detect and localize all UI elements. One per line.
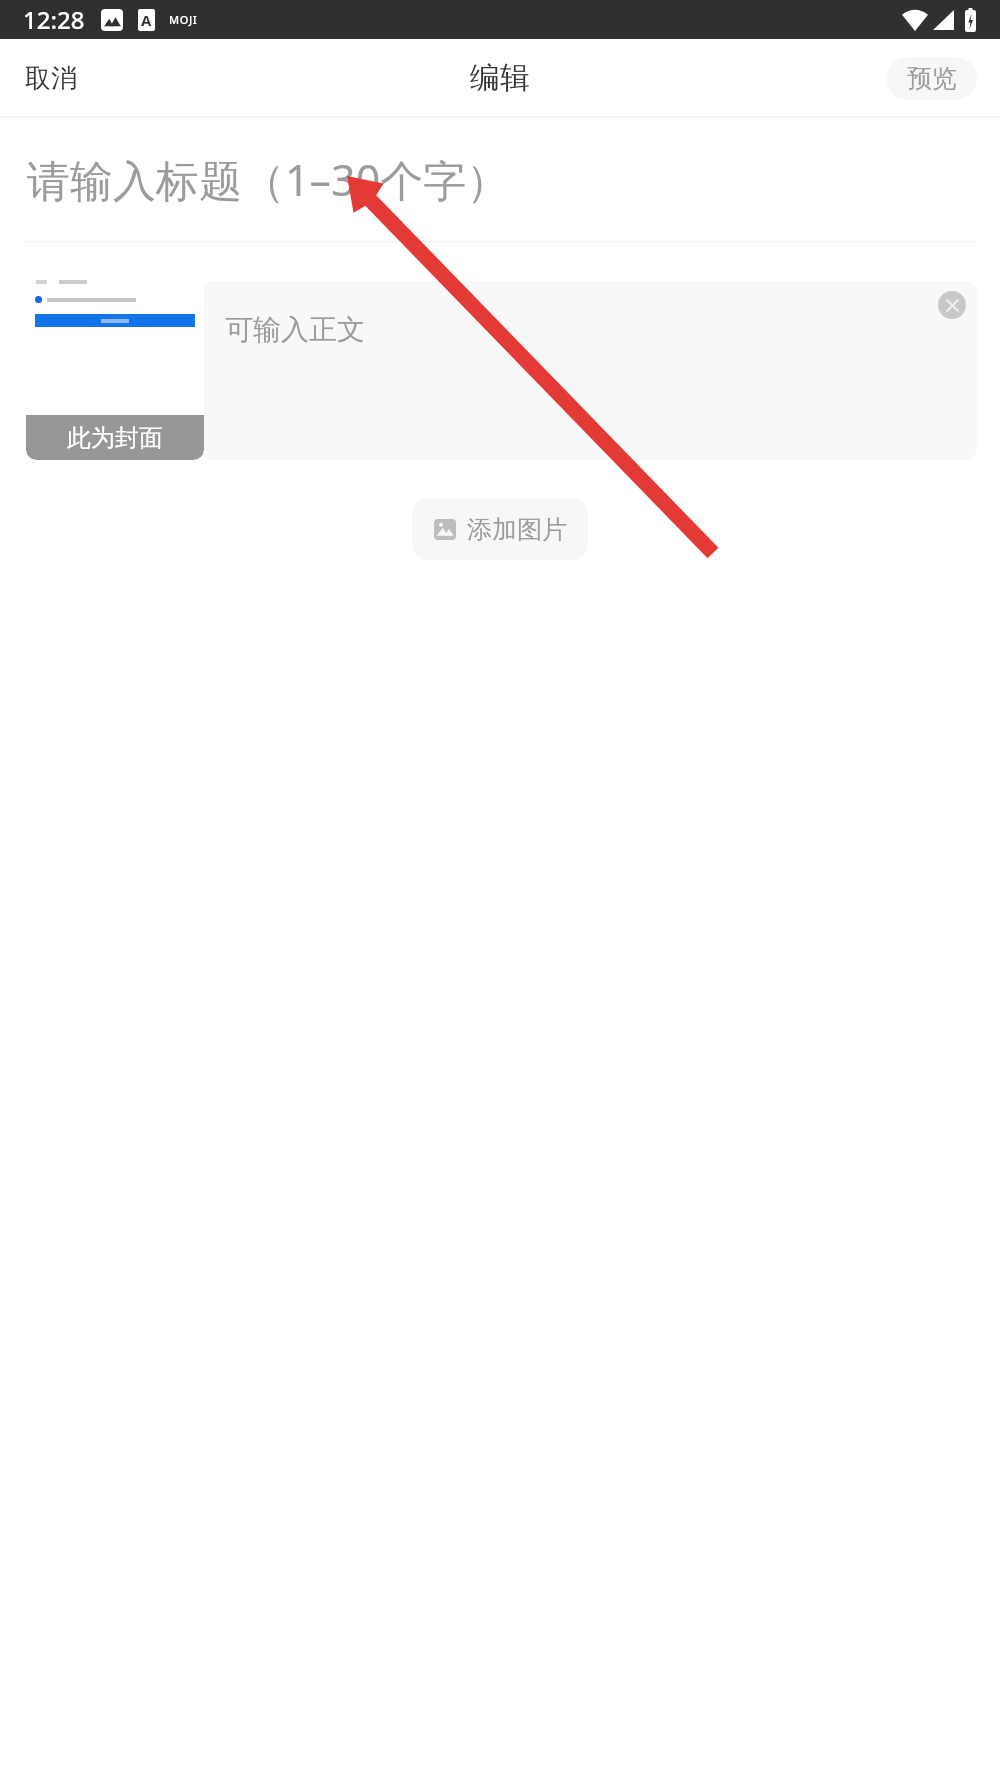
staticText: 取消 xyxy=(25,62,77,95)
button[interactable]: 请输入标题（1–30个字） xyxy=(0,117,1000,241)
button[interactable]: 添加图片 xyxy=(412,498,588,560)
staticText: 预览 xyxy=(907,63,957,94)
staticText: 添加图片 xyxy=(467,514,567,545)
button[interactable]: 可输入正文 xyxy=(200,281,977,460)
button[interactable]: 预览 xyxy=(886,57,977,100)
staticText: 12:28 xyxy=(23,3,85,36)
staticText: 请输入标题（1–30个字） xyxy=(27,150,510,209)
staticText: 此为封面 xyxy=(67,423,163,453)
staticText: 编辑 xyxy=(470,59,530,97)
staticText: MOJI xyxy=(169,12,198,27)
staticText: A xyxy=(141,10,152,30)
button[interactable]: 此为封面 xyxy=(26,270,204,460)
button[interactable]: Remove image xyxy=(938,291,966,319)
button[interactable]: 取消 xyxy=(0,44,102,113)
staticText: 可输入正文 xyxy=(225,312,365,347)
